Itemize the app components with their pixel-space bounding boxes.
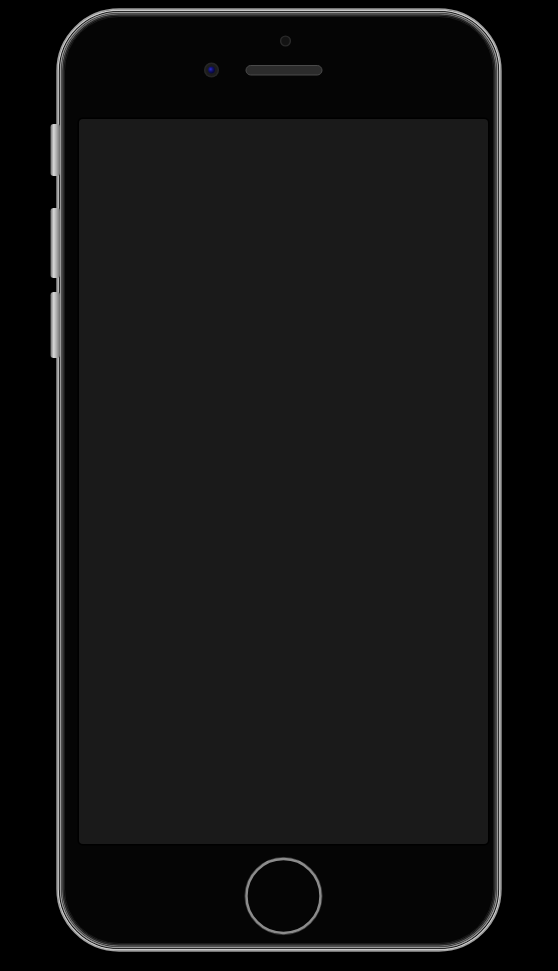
button[interactable]: iPhone device preview bbox=[0, 0, 558, 971]
